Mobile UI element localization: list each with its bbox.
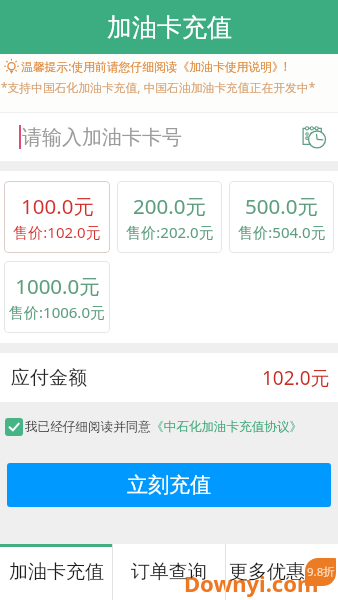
button[interactable]: 充值记录 — [293, 117, 333, 157]
button[interactable]: 加油卡充值 — [0, 544, 112, 600]
staticText: 售价:202.0元 — [126, 222, 214, 242]
staticText: 售价:102.0元 — [13, 222, 101, 242]
staticText: 《中石化加油卡充值协议》 — [151, 419, 303, 435]
button[interactable]: 订单查询 — [113, 544, 225, 600]
button[interactable]: 1000.0元 — [4, 261, 110, 333]
button[interactable]: 200.0元 — [117, 181, 222, 253]
staticText: 更多优惠 — [229, 560, 305, 584]
staticText: 立刻充值 — [127, 472, 211, 498]
button[interactable]: 500.0元 — [229, 181, 334, 253]
staticText: 我已经仔细阅读并同意 — [25, 419, 151, 435]
staticText: 100.0元 — [21, 192, 94, 220]
staticText: 加油卡充值 — [9, 560, 104, 584]
staticText: 加油卡充值 — [107, 12, 232, 43]
staticText: 500.0元 — [245, 192, 318, 220]
staticText: 1000.0元 — [15, 272, 100, 300]
button[interactable]: 立刻充值 — [7, 463, 331, 507]
button[interactable]: 100.0元 — [4, 181, 110, 253]
staticText: 应付金额 — [11, 366, 87, 390]
button[interactable]: 更多优惠 — [226, 544, 338, 600]
staticText: 请输入加油卡卡号 — [22, 125, 293, 150]
button[interactable]: 我已经仔细阅读并同意 — [5, 417, 338, 437]
staticText: Downyi.com — [184, 568, 319, 598]
staticText: 9.8折 — [307, 564, 335, 580]
staticText: 售价:504.0元 — [238, 222, 326, 242]
staticText: 200.0元 — [133, 192, 206, 220]
staticText: 订单查询 — [131, 560, 207, 584]
staticText: 售价:1006.0元 — [9, 302, 105, 322]
staticText: *支持中国石化加油卡充值, 中国石油加油卡充值正在开发中* — [1, 79, 316, 95]
staticText: 102.0元 — [262, 365, 330, 391]
staticText: 温馨提示:使用前请您仔细阅读《加油卡使用说明》! — [21, 58, 287, 74]
